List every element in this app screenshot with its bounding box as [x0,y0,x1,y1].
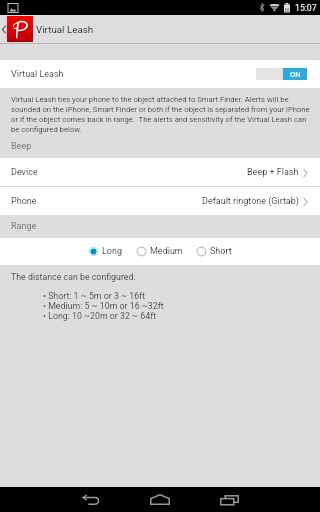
staticText: Beep [11,141,32,152]
button[interactable]: Navigate up [0,15,7,44]
staticText: • Short: 1 ~ 5m or 3 ~ 16ft [43,291,146,301]
staticText: Phone [11,196,37,207]
staticText: Device [11,167,38,178]
button[interactable]: Home [136,487,184,512]
staticText: Virtual Leash [11,69,64,80]
button[interactable]: Back [67,487,115,512]
staticText: Short [210,246,232,257]
staticText: Medium [150,246,183,257]
button[interactable]: Phone [0,187,320,215]
button[interactable]: Medium [136,246,183,257]
staticText: Virtual Leash [36,24,94,35]
button[interactable]: Long [88,246,123,257]
button[interactable]: Short [196,246,232,257]
staticText: ON [290,70,301,79]
staticText: • Medium: 5 ~ 10m or 16 ~32ft [43,301,164,311]
staticText: Range [11,221,37,232]
staticText: 15:07 [295,3,317,13]
staticText: Default ringtone (Girtab) [202,196,299,207]
staticText: Virtual Leash ties your phone to the obj… [11,95,310,134]
button[interactable]: Recent apps [205,487,253,512]
staticText: • Long: 10 ~20m or 32 ~ 64ft [43,311,157,321]
staticText: The distance can be configured. [11,272,136,282]
staticText: Beep + Flash [247,167,299,178]
button[interactable]: Device [0,158,320,186]
staticText: Long [102,246,123,257]
button[interactable]: Virtual Leash [0,60,320,88]
